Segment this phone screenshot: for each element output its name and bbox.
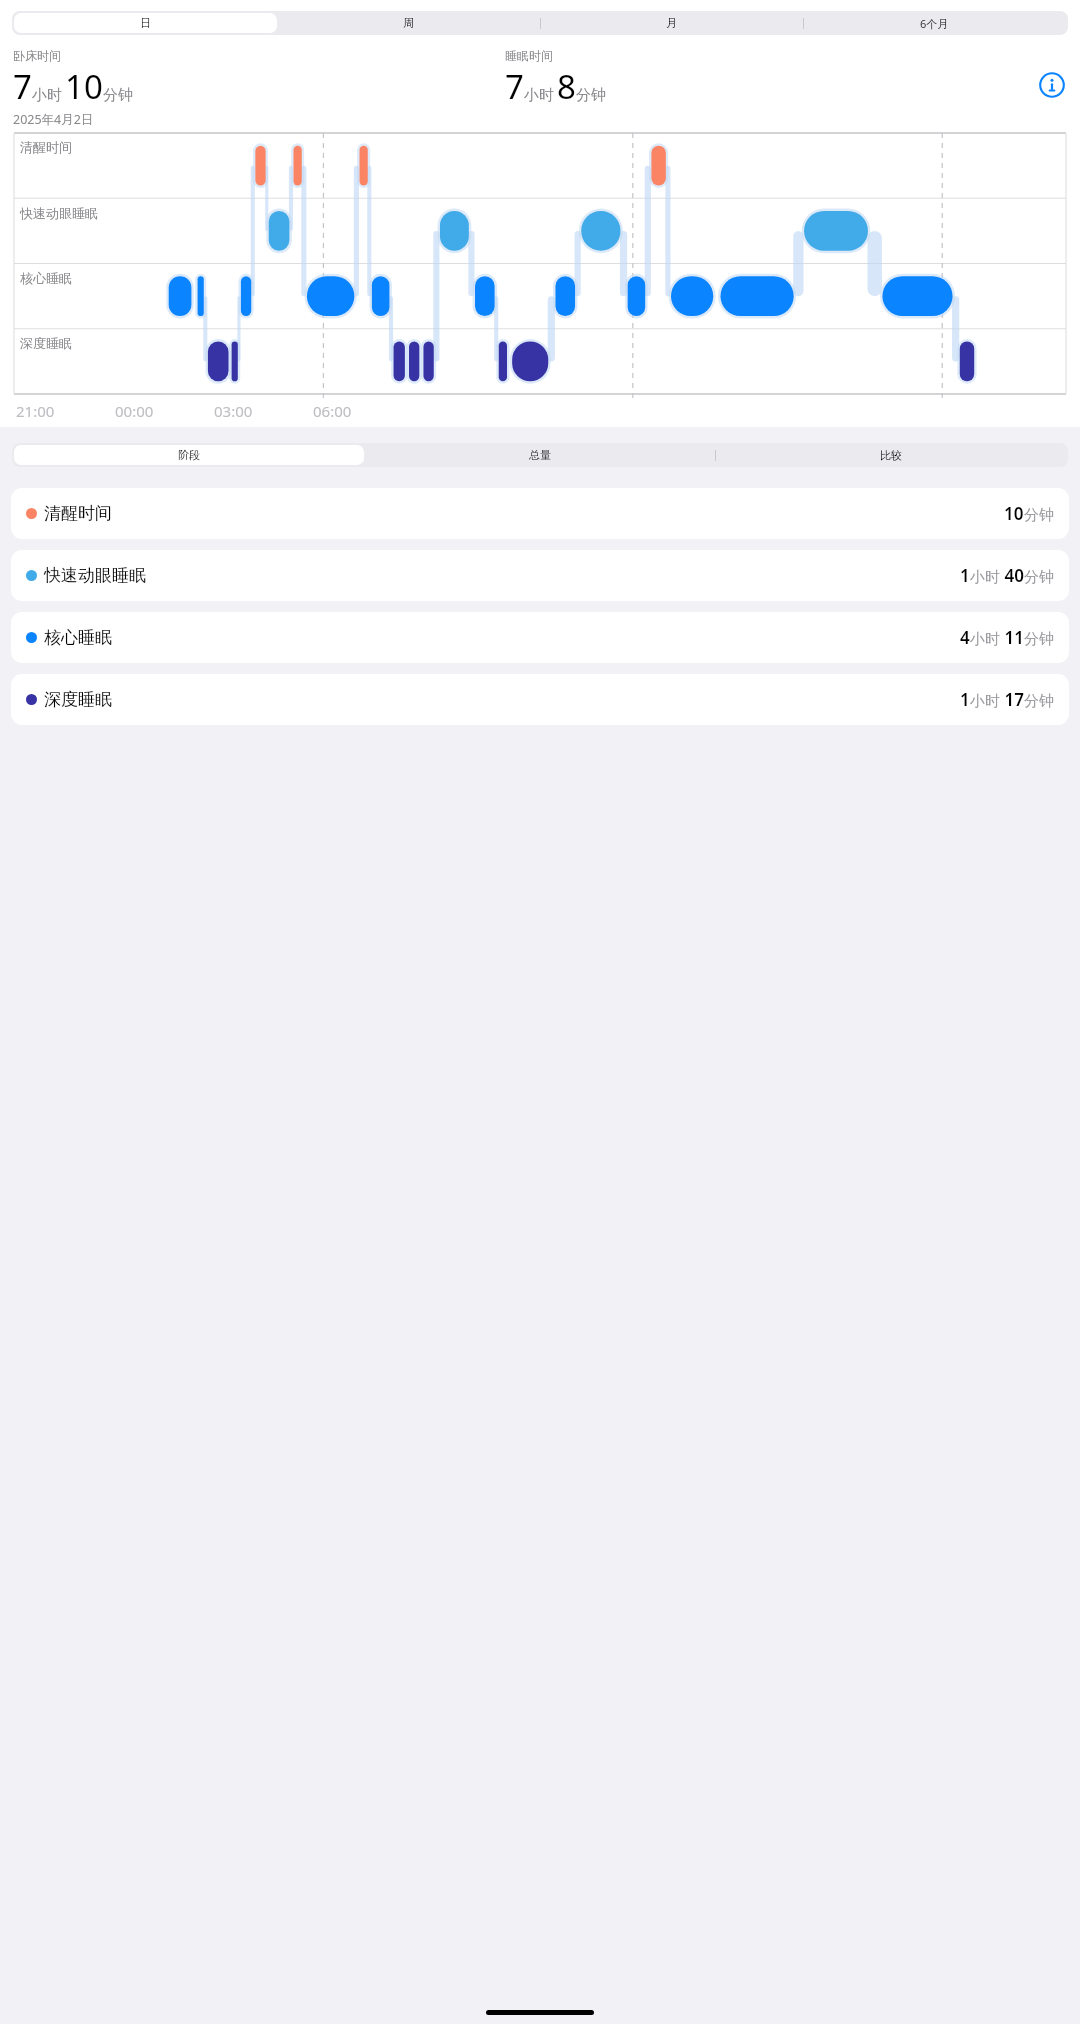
staticText: 2025年4月2日: [13, 111, 94, 128]
staticText: 7: [505, 64, 524, 109]
button[interactable]: 核心睡眠: [11, 612, 1069, 663]
button[interactable]: 6个月: [803, 13, 1066, 33]
staticText: 1: [960, 564, 970, 587]
staticText: 40: [1000, 564, 1024, 587]
staticText: 7: [13, 64, 32, 109]
staticText: 快速动眼睡眠: [20, 205, 98, 221]
button[interactable]: 信息: [1037, 70, 1067, 100]
staticText: 比较: [880, 448, 902, 462]
staticText: 8: [557, 64, 576, 109]
staticText: 分钟: [1024, 630, 1054, 649]
staticText: 小时: [524, 86, 554, 105]
button[interactable]: 周: [277, 13, 540, 33]
staticText: 10: [65, 64, 103, 109]
staticText: 日: [140, 16, 151, 30]
staticText: 17: [1000, 688, 1024, 711]
staticText: 月: [666, 16, 677, 30]
button[interactable]: 日: [14, 13, 277, 33]
staticText: 睡眠时间: [505, 48, 553, 63]
staticText: 周: [403, 16, 414, 30]
staticText: 核心睡眠: [20, 270, 72, 286]
staticText: 深度睡眠: [44, 689, 112, 710]
button[interactable]: 总量: [364, 445, 715, 465]
staticText: 6个月: [920, 16, 949, 31]
staticText: 核心睡眠: [44, 627, 112, 648]
staticText: 卧床时间: [13, 48, 61, 63]
staticText: 03:00: [214, 401, 253, 421]
staticText: 11: [1000, 626, 1024, 649]
staticText: 小时: [970, 630, 1000, 649]
staticText: 小时: [970, 568, 1000, 587]
staticText: 快速动眼睡眠: [44, 565, 146, 586]
staticText: 分钟: [1024, 692, 1054, 711]
staticText: 分钟: [1024, 568, 1054, 587]
staticText: 10: [1004, 502, 1024, 525]
staticText: 清醒时间: [44, 503, 112, 524]
staticText: 分钟: [103, 86, 133, 105]
button[interactable]: 清醒时间: [11, 488, 1069, 539]
staticText: 分钟: [1024, 506, 1054, 525]
staticText: 1: [960, 688, 970, 711]
staticText: 4: [960, 626, 970, 649]
button[interactable]: 比较: [715, 445, 1066, 465]
staticText: 清醒时间: [20, 139, 72, 155]
button[interactable]: 月: [540, 13, 803, 33]
staticText: 分钟: [576, 86, 606, 105]
staticText: 21:00: [16, 401, 55, 421]
staticText: 阶段: [178, 448, 200, 462]
staticText: 总量: [529, 448, 551, 462]
button[interactable]: 快速动眼睡眠: [11, 550, 1069, 601]
staticText: 小时: [970, 692, 1000, 711]
button[interactable]: 阶段: [14, 445, 364, 465]
staticText: 00:00: [115, 401, 154, 421]
button[interactable]: 深度睡眠: [11, 674, 1069, 725]
staticText: 深度睡眠: [20, 335, 72, 351]
staticText: 小时: [32, 86, 62, 105]
staticText: 06:00: [313, 401, 352, 421]
